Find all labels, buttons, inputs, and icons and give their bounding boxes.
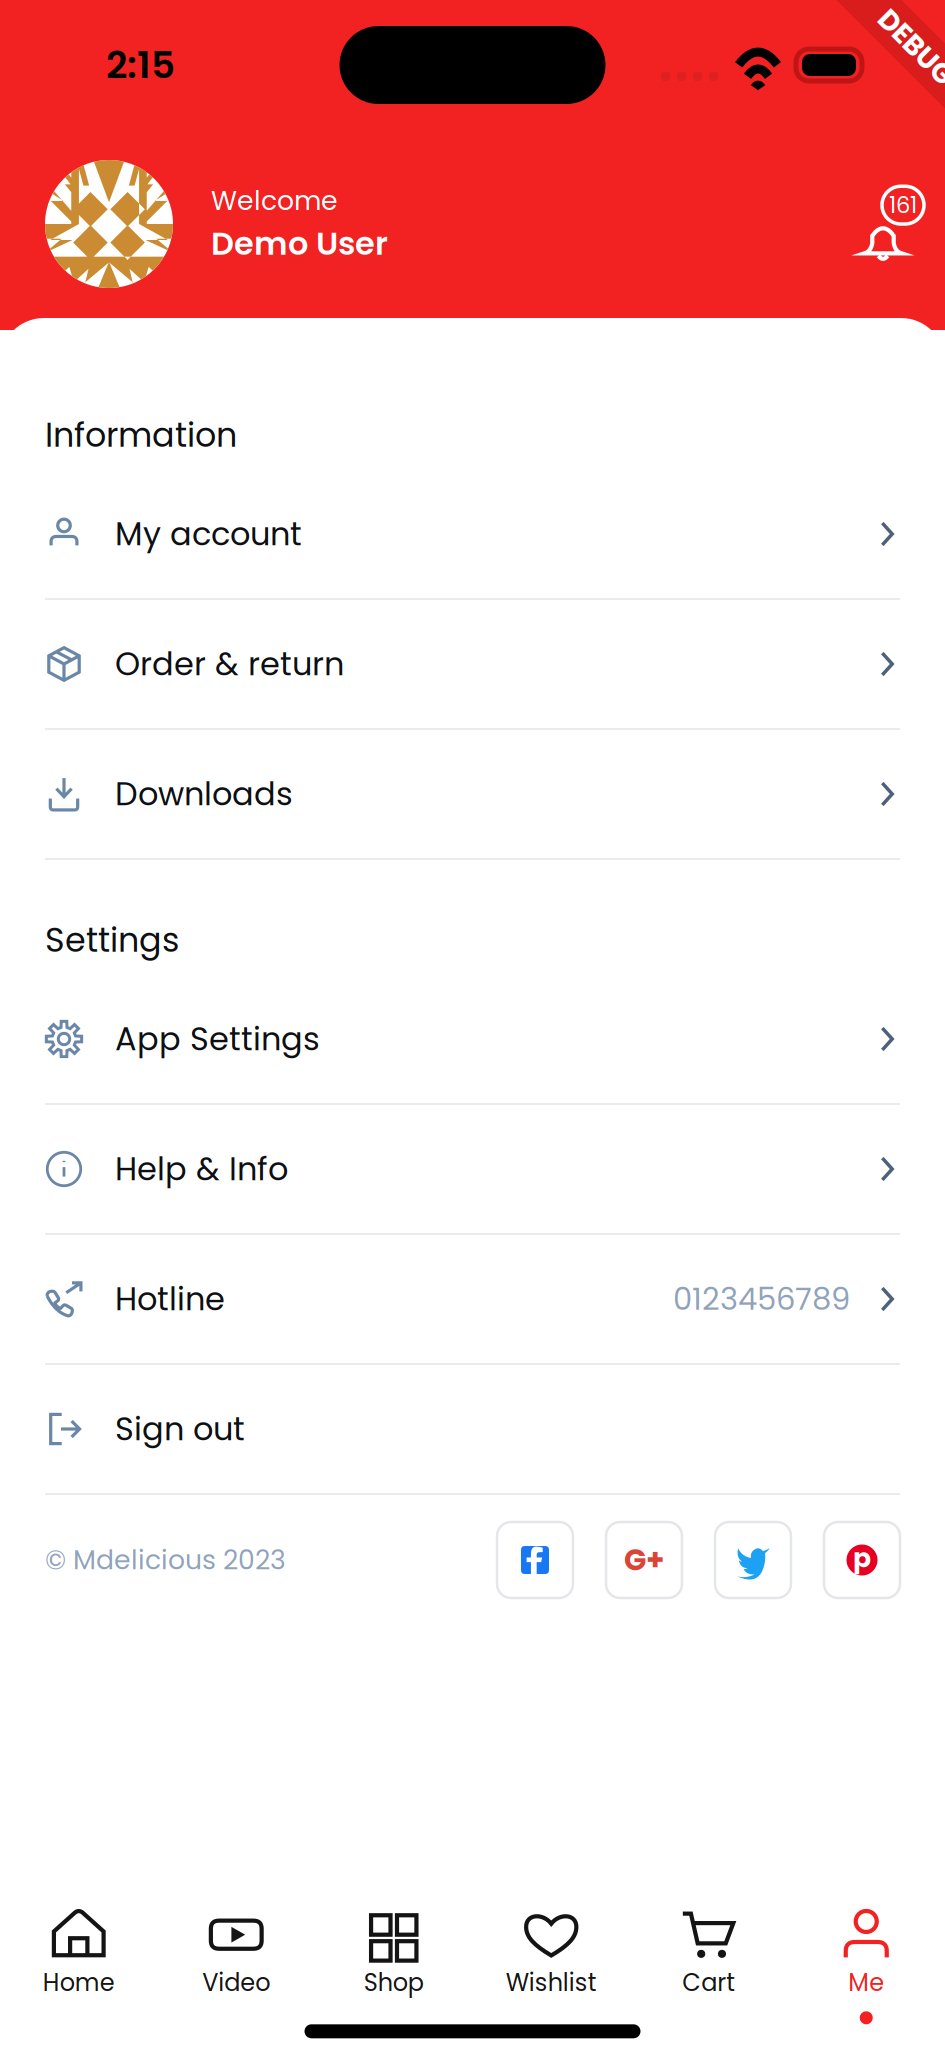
button[interactable]: Cart (630, 1908, 787, 2024)
staticText: Me (848, 1966, 884, 1999)
staticText: 2:15 (106, 39, 175, 91)
staticText: Settings (45, 917, 179, 963)
staticText: Home (43, 1966, 115, 1999)
button[interactable]: Wishlist (472, 1908, 630, 2024)
staticText: My account (115, 512, 302, 556)
button[interactable]: Shop (315, 1908, 472, 2024)
staticText: Sign out (115, 1407, 245, 1451)
button[interactable]: Twitter (715, 1522, 791, 1598)
staticText: 161 (889, 189, 917, 221)
button[interactable]: Downloads (0, 730, 945, 858)
button[interactable]: My account (0, 470, 945, 598)
staticText: DEBUG (869, 27, 945, 67)
button[interactable]: Order & return (0, 600, 945, 728)
button[interactable]: Help & Info (0, 1105, 945, 1233)
staticText: G+ (624, 1539, 664, 1581)
staticText: Information (45, 412, 237, 458)
staticText: Help & Info (115, 1147, 288, 1191)
staticText: Wishlist (506, 1966, 597, 1999)
staticText: Downloads (115, 772, 293, 816)
staticText: Demo User (211, 221, 388, 266)
staticText: Welcome (211, 182, 338, 219)
button[interactable]: Home (0, 1908, 157, 2024)
button[interactable]: Me (787, 1908, 945, 2024)
staticText: p (853, 1539, 871, 1577)
staticText: Cart (682, 1966, 735, 1999)
button[interactable]: Facebook (497, 1522, 573, 1598)
button[interactable]: Pinterest (824, 1522, 900, 1598)
staticText: Shop (364, 1966, 424, 1999)
button[interactable]: Google Plus (606, 1522, 682, 1598)
staticText: Hotline (115, 1277, 225, 1321)
button[interactable]: Notifications, 161 unread (838, 172, 924, 276)
button[interactable]: App Settings (0, 975, 945, 1103)
button[interactable]: Sign out (0, 1365, 945, 1493)
staticText: Video (202, 1966, 270, 1999)
button[interactable]: Video (157, 1908, 315, 2024)
staticText: © Mdelicious 2023 (45, 1541, 286, 1579)
button[interactable]: Hotline (0, 1235, 945, 1363)
staticText: Order & return (115, 642, 344, 686)
staticText: App Settings (115, 1017, 320, 1061)
staticText: 0123456789 (673, 1277, 850, 1320)
